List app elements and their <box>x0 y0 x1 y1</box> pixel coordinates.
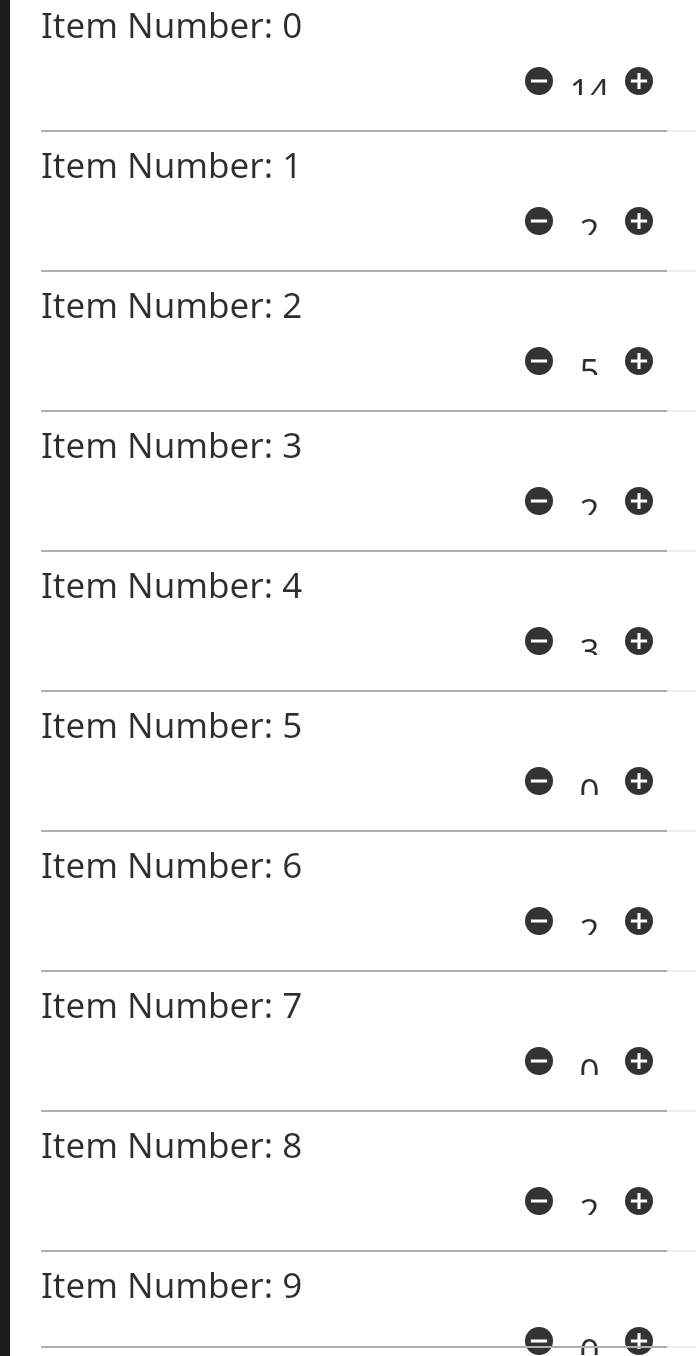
button[interactable]: Increase item 9 <box>625 1327 653 1355</box>
button[interactable]: Increase item 0 <box>625 67 653 95</box>
staticText: 14 <box>569 67 610 95</box>
button[interactable]: Decrease item 7 <box>525 1047 553 1075</box>
button[interactable]: Decrease item 1 <box>525 207 553 235</box>
staticText: Item Number: 2 <box>41 281 303 329</box>
button[interactable]: Decrease item 5 <box>525 767 553 795</box>
button[interactable]: Decrease item 2 <box>525 347 553 375</box>
button[interactable]: Item Number: 1 <box>0 132 696 272</box>
button[interactable]: Item Number: 0 <box>0 0 696 132</box>
button[interactable]: Item Number: 3 <box>0 412 696 552</box>
button[interactable]: Item Number: 2 <box>0 272 696 412</box>
button[interactable]: Decrease item 6 <box>525 907 553 935</box>
button[interactable]: Increase item 1 <box>625 207 653 235</box>
staticText: Item Number: 6 <box>41 841 303 889</box>
staticText: 2 <box>579 487 600 515</box>
button[interactable]: Decrease item 0 <box>525 67 553 95</box>
button[interactable]: Increase item 7 <box>625 1047 653 1075</box>
button[interactable]: Decrease item 9 <box>525 1327 553 1355</box>
button[interactable]: Item Number: 8 <box>0 1112 696 1252</box>
button[interactable]: Increase item 2 <box>625 347 653 375</box>
button[interactable]: Decrease item 4 <box>525 627 553 655</box>
staticText: 2 <box>579 907 600 935</box>
button[interactable]: Item Number: 6 <box>0 832 696 972</box>
staticText: 3 <box>579 627 600 655</box>
staticText: Item Number: 0 <box>41 1 303 49</box>
button[interactable]: Decrease item 8 <box>525 1187 553 1215</box>
button[interactable]: Item Number: 5 <box>0 692 696 832</box>
staticText: 0 <box>579 767 600 795</box>
staticText: Item Number: 5 <box>41 701 303 749</box>
button[interactable]: Decrease item 3 <box>525 487 553 515</box>
button[interactable]: Increase item 8 <box>625 1187 653 1215</box>
button[interactable]: Increase item 6 <box>625 907 653 935</box>
staticText: Item Number: 7 <box>41 981 303 1029</box>
staticText: 0 <box>579 1327 600 1355</box>
staticText: 0 <box>579 1047 600 1075</box>
button[interactable]: Item Number: 9 <box>0 1252 696 1348</box>
staticText: Item Number: 4 <box>41 561 303 609</box>
button[interactable]: Increase item 5 <box>625 767 653 795</box>
button[interactable]: Item Number: 7 <box>0 972 696 1112</box>
staticText: Item Number: 9 <box>41 1261 303 1309</box>
staticText: 5 <box>579 347 600 375</box>
button[interactable]: Item Number: 4 <box>0 552 696 692</box>
button[interactable]: Increase item 4 <box>625 627 653 655</box>
staticText: Item Number: 1 <box>41 141 303 189</box>
staticText: Item Number: 8 <box>41 1121 303 1169</box>
staticText: 2 <box>579 207 600 235</box>
staticText: 2 <box>579 1187 600 1215</box>
staticText: Item Number: 3 <box>41 421 303 469</box>
button[interactable]: Increase item 3 <box>625 487 653 515</box>
